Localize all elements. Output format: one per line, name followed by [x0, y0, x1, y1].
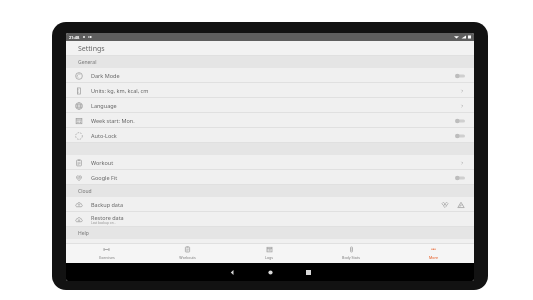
other: Open [459, 160, 465, 166]
button[interactable]: Home [259, 263, 281, 281]
other: Toggle [454, 133, 465, 139]
button[interactable]: Restore data [66, 212, 474, 227]
button[interactable]: Google Fit [66, 170, 474, 185]
staticText: More [429, 255, 438, 260]
staticText: Exercises [99, 255, 115, 260]
staticText: Language [91, 102, 117, 109]
other: Open [459, 103, 465, 109]
button[interactable]: Dark Mode [66, 68, 474, 83]
staticText: Units: kg, km, kcal, cm [91, 87, 149, 94]
staticText: Settings [78, 44, 105, 54]
button[interactable]: Recent apps [297, 263, 319, 281]
other: Toggle [454, 73, 465, 79]
other: Dropbox [441, 201, 449, 209]
button[interactable]: Auto-Lock [66, 128, 474, 143]
staticText: Last backup on - [91, 221, 116, 225]
button[interactable]: Units: kg, km, kcal, cm [66, 83, 474, 98]
staticText: 21:48 [69, 35, 80, 40]
button[interactable]: Language [66, 98, 474, 113]
button[interactable]: Body Stats [310, 243, 392, 263]
button[interactable]: More [392, 243, 474, 263]
staticText: Logs [265, 255, 273, 260]
button[interactable]: Exercises [66, 243, 147, 263]
staticText: General [78, 59, 97, 66]
other: Toggle [454, 175, 465, 181]
staticText: Google Fit [91, 174, 118, 181]
button[interactable]: Back [221, 263, 243, 281]
other: Toggle [454, 118, 465, 124]
staticText: Dark Mode [91, 72, 120, 79]
staticText: Auto-Lock [91, 132, 117, 139]
staticText: Backup data [91, 201, 123, 208]
staticText: Week start: Mon. [91, 117, 135, 124]
button[interactable]: Logs [228, 243, 310, 263]
button[interactable]: Workouts [147, 243, 228, 263]
other: Open [459, 88, 465, 94]
staticText: Cloud [78, 188, 92, 195]
staticText: Restore data [91, 214, 124, 221]
other: Google Drive [457, 201, 465, 209]
staticText: Workouts [179, 255, 196, 260]
button[interactable]: Week start: Mon. [66, 113, 474, 128]
staticText: Workout [91, 159, 114, 166]
staticText: Help [78, 230, 89, 237]
staticText: Body Stats [342, 255, 360, 260]
button[interactable]: Backup data [66, 197, 474, 212]
button[interactable]: Workout [66, 155, 474, 170]
